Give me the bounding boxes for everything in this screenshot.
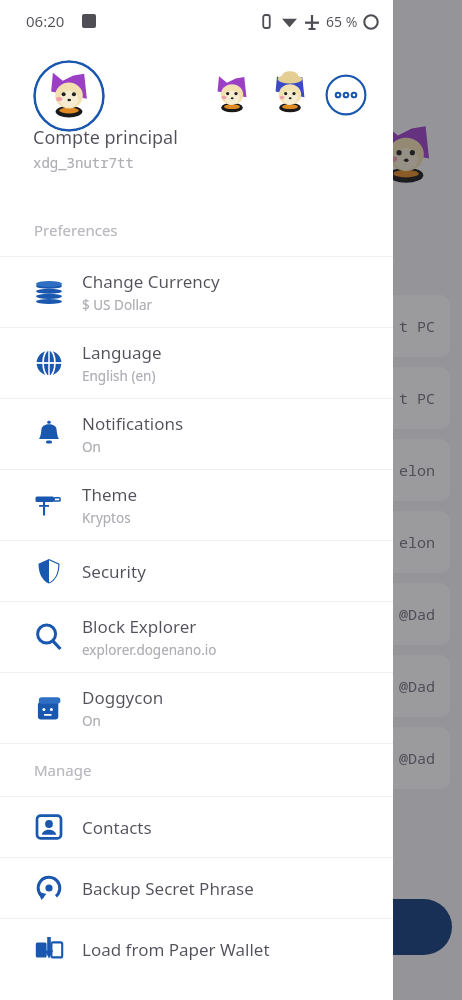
button[interactable]: Account 3 [269, 74, 311, 116]
button[interactable]: Security [0, 541, 393, 601]
button[interactable]: Send [302, 899, 452, 955]
button[interactable]: Load from Paper Wallet [0, 919, 393, 979]
button[interactable]: Account 2 [211, 74, 253, 116]
button[interactable]: Contacts [0, 797, 393, 857]
staticText: On [82, 712, 101, 730]
button[interactable]: @Dad [12, 583, 450, 645]
button[interactable]: t PC [12, 295, 450, 357]
staticText: Block Explorer [82, 615, 197, 638]
button[interactable]: Block Explorer [0, 602, 393, 672]
staticText: On [82, 438, 101, 456]
button[interactable]: Language [0, 328, 393, 398]
staticText: @Dad [399, 676, 436, 696]
staticText: @Dad [399, 604, 436, 624]
staticText: Load from Paper Wallet [82, 938, 270, 961]
button[interactable]: t PC [12, 367, 450, 429]
staticText: Security [82, 560, 146, 583]
staticText: Manage [34, 760, 92, 780]
staticText: elon [399, 532, 436, 552]
staticText: Notifications [82, 412, 184, 435]
staticText: elon [399, 460, 436, 480]
staticText: Preferences [34, 220, 118, 240]
staticText: @Dad [399, 748, 436, 768]
staticText: Kryptos [82, 509, 131, 527]
button[interactable]: Change Currency [0, 257, 393, 327]
staticText: Compte principal [33, 125, 178, 150]
button[interactable]: elon [12, 439, 450, 501]
button[interactable]: @Dad [12, 727, 450, 789]
staticText: Contacts [82, 816, 152, 839]
button[interactable]: @Dad [12, 655, 450, 717]
button[interactable]: More accounts [325, 74, 367, 116]
staticText: English (en) [82, 367, 156, 385]
staticText: 65 % [326, 12, 358, 31]
button[interactable]: elon [12, 511, 450, 573]
staticText: Theme [82, 483, 138, 506]
button[interactable]: Account avatar [33, 60, 105, 132]
staticText: explorer.dogenano.io [82, 641, 217, 659]
staticText: t PC [399, 388, 436, 408]
staticText: Doggycon [82, 686, 164, 709]
button[interactable]: Notifications [0, 399, 393, 469]
staticText: Change Currency [82, 270, 220, 293]
button[interactable]: Doggycon [0, 673, 393, 743]
button[interactable]: Backup Secret Phrase [0, 858, 393, 918]
button[interactable]: Theme [0, 470, 393, 540]
staticText: xdg_3nutr7tt [33, 153, 134, 172]
staticText: 06:20 [26, 11, 65, 31]
staticText: $ US Dollar [82, 296, 153, 314]
staticText: Backup Secret Phrase [82, 877, 254, 900]
staticText: t PC [399, 316, 436, 336]
staticText: Language [82, 341, 162, 364]
